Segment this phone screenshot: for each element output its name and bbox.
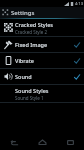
button[interactable]: Settings bbox=[0, 7, 84, 18]
button[interactable]: Cracked Styles bbox=[0, 19, 84, 36]
button[interactable]: Fixed Image checkbox bbox=[72, 40, 82, 50]
staticText: Fixed Image bbox=[15, 41, 48, 48]
staticText: Vibrate bbox=[15, 57, 34, 64]
button[interactable]: Home bbox=[28, 134, 56, 150]
button[interactable]: Vibrate bbox=[0, 53, 84, 68]
staticText: 4:13 bbox=[75, 1, 83, 6]
staticText: Sound Styles bbox=[15, 87, 49, 94]
staticText: Sound bbox=[15, 73, 32, 80]
button[interactable]: Vibrate checkbox bbox=[72, 56, 82, 66]
button[interactable]: Back bbox=[0, 134, 28, 150]
staticText: Cracked Style 2 bbox=[15, 29, 48, 35]
button[interactable]: Recents bbox=[56, 134, 84, 150]
button[interactable]: Fixed Image bbox=[0, 37, 84, 52]
staticText: Sound Style 1 bbox=[15, 95, 44, 101]
staticText: Cracked Styles bbox=[15, 21, 53, 28]
staticText: Settings bbox=[11, 9, 35, 17]
button[interactable]: Sound Styles bbox=[0, 85, 84, 102]
button[interactable]: Sound bbox=[0, 69, 84, 84]
button[interactable]: Sound checkbox bbox=[72, 72, 82, 82]
